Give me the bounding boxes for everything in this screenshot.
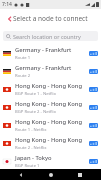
staticText: BGP Route 1 bbox=[15, 163, 40, 169]
staticText: Hong Kong - Hong Kong bbox=[15, 118, 82, 126]
button[interactable]: Signal strength bbox=[89, 123, 98, 128]
button[interactable]: Back bbox=[13, 169, 29, 180]
button[interactable]: Search location or country here... bbox=[3, 31, 98, 41]
staticText: Search location or country here... bbox=[13, 33, 95, 40]
button[interactable]: Home bbox=[43, 169, 59, 180]
button[interactable]: Back bbox=[3, 12, 16, 25]
button[interactable]: Hong Kong - Hong Kong bbox=[0, 116, 101, 134]
staticText: BGP Route 1 - Netflix bbox=[15, 91, 56, 97]
button[interactable]: Germany - Frankfurt bbox=[0, 44, 101, 62]
staticText: Route 1 - Netflix bbox=[15, 127, 47, 133]
button[interactable]: Germany - Frankfurt bbox=[0, 62, 101, 80]
staticText: Hong Kong - Hong Kong bbox=[15, 100, 82, 108]
staticText: BGP Route 2 - Netflix bbox=[15, 109, 56, 115]
staticText: Route 2 - Netflix bbox=[15, 145, 47, 151]
staticText: Hong Kong - Hong Kong bbox=[15, 82, 82, 90]
button[interactable]: Hong Kong - Hong Kong bbox=[0, 80, 101, 98]
button[interactable]: Signal strength bbox=[89, 51, 98, 56]
staticText: Germany - Frankfurt bbox=[15, 46, 72, 54]
staticText: Route 1 bbox=[15, 55, 31, 61]
button[interactable]: Hong Kong - Hong Kong bbox=[0, 134, 101, 152]
staticText: Route 2 bbox=[15, 73, 31, 79]
button[interactable]: Signal strength bbox=[89, 141, 98, 146]
staticText: Japan - Tokyo bbox=[15, 154, 52, 162]
button[interactable]: Signal strength bbox=[89, 159, 98, 164]
staticText: Select a node to connect bbox=[13, 14, 88, 23]
staticText: Germany - Frankfurt bbox=[15, 64, 72, 72]
button[interactable]: Japan - Tokyo bbox=[0, 152, 101, 170]
button[interactable]: Signal strength bbox=[89, 87, 98, 92]
button[interactable]: Signal strength bbox=[89, 105, 98, 110]
button[interactable]: Recent apps bbox=[72, 169, 88, 180]
staticText: 7:14 bbox=[2, 1, 12, 8]
button[interactable]: Signal strength bbox=[89, 69, 98, 74]
button[interactable]: Hong Kong - Hong Kong bbox=[0, 98, 101, 116]
staticText: Hong Kong - Hong Kong bbox=[15, 136, 82, 144]
